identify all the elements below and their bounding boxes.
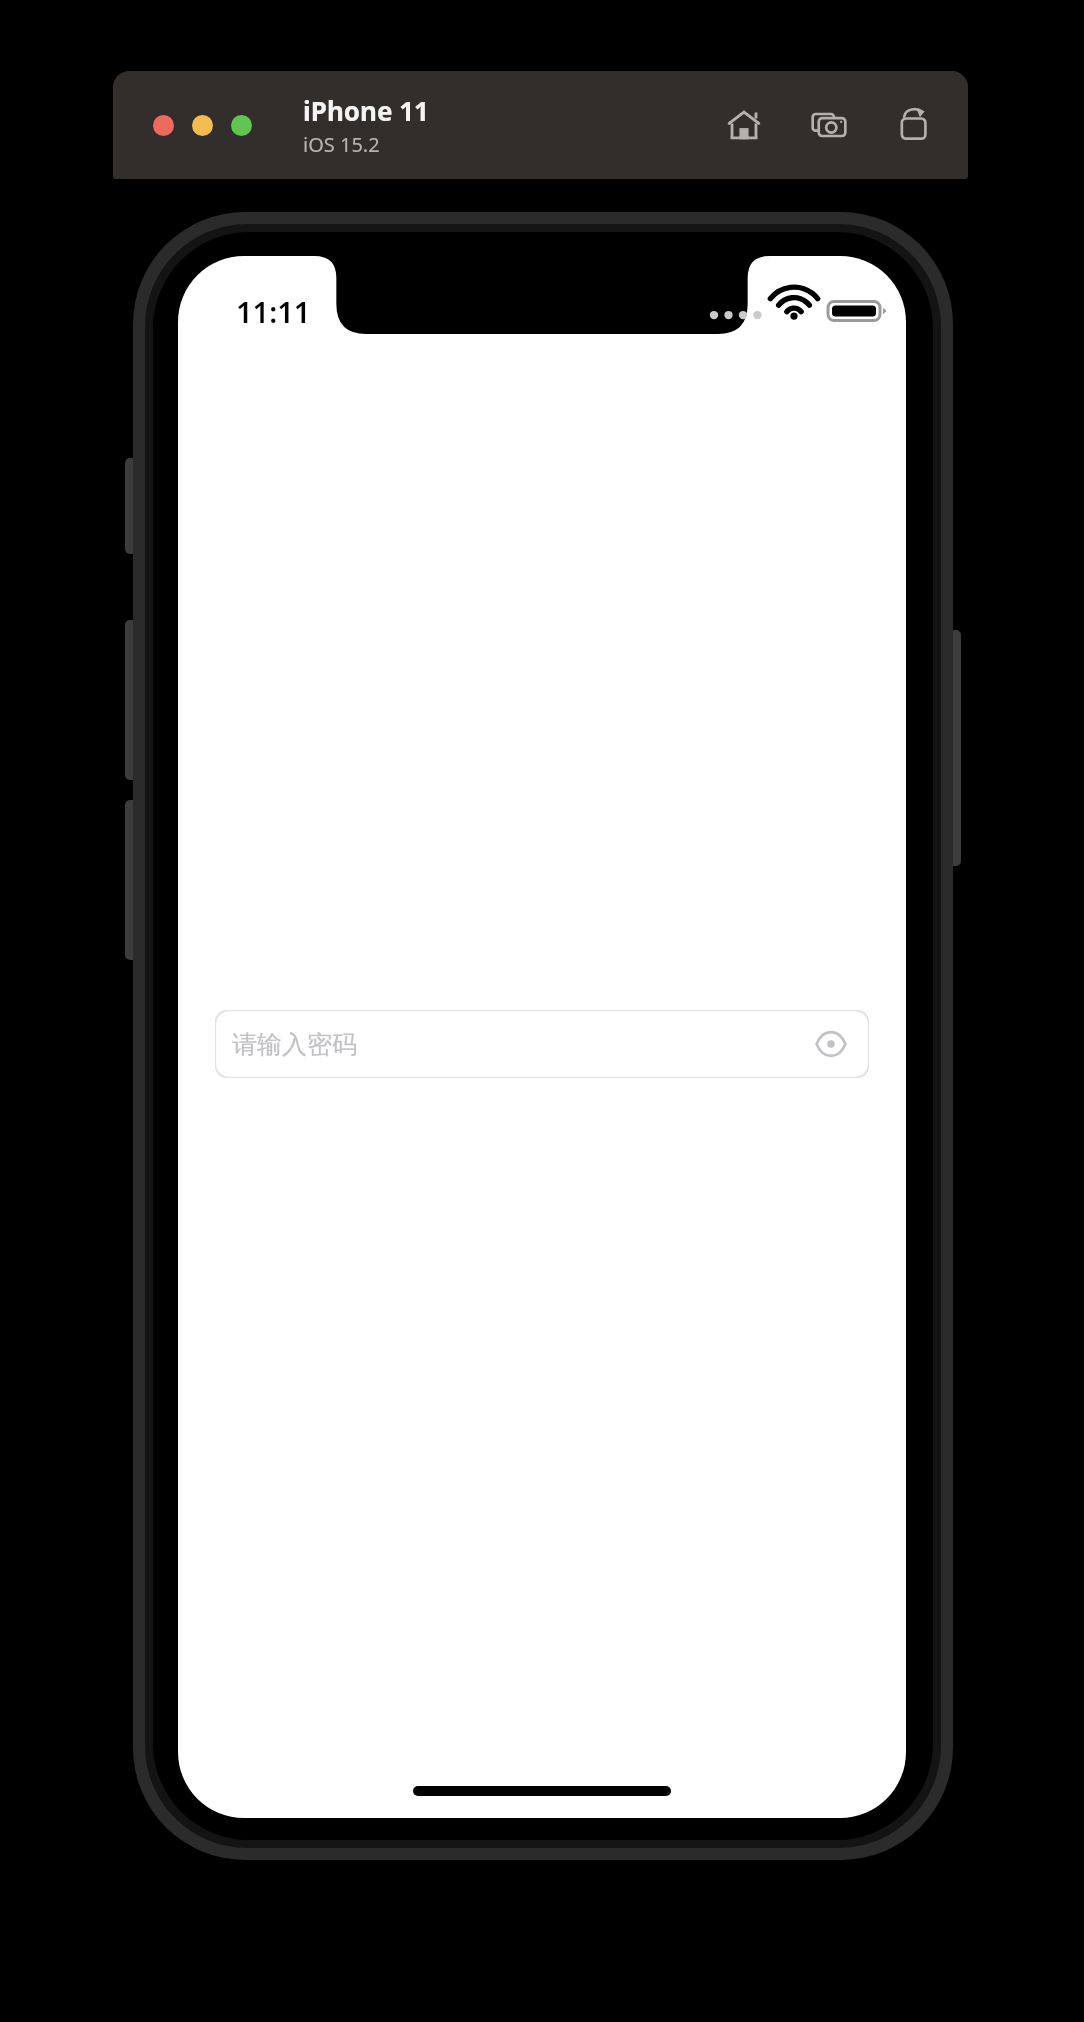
button[interactable]: Show password <box>807 1020 855 1068</box>
button[interactable]: Screenshot <box>803 99 855 151</box>
button[interactable]: Close <box>153 115 174 136</box>
staticText: iOS 15.2 <box>303 131 380 158</box>
button[interactable]: 请输入密码 <box>215 1010 869 1078</box>
button[interactable]: Zoom <box>231 115 252 136</box>
button[interactable]: Home <box>718 99 770 151</box>
button[interactable]: Share <box>888 99 940 151</box>
button[interactable]: Minimize <box>192 115 213 136</box>
staticText: 请输入密码 <box>232 1029 357 1060</box>
staticText: 11:11 <box>236 292 311 331</box>
staticText: iPhone 11 <box>303 93 429 128</box>
